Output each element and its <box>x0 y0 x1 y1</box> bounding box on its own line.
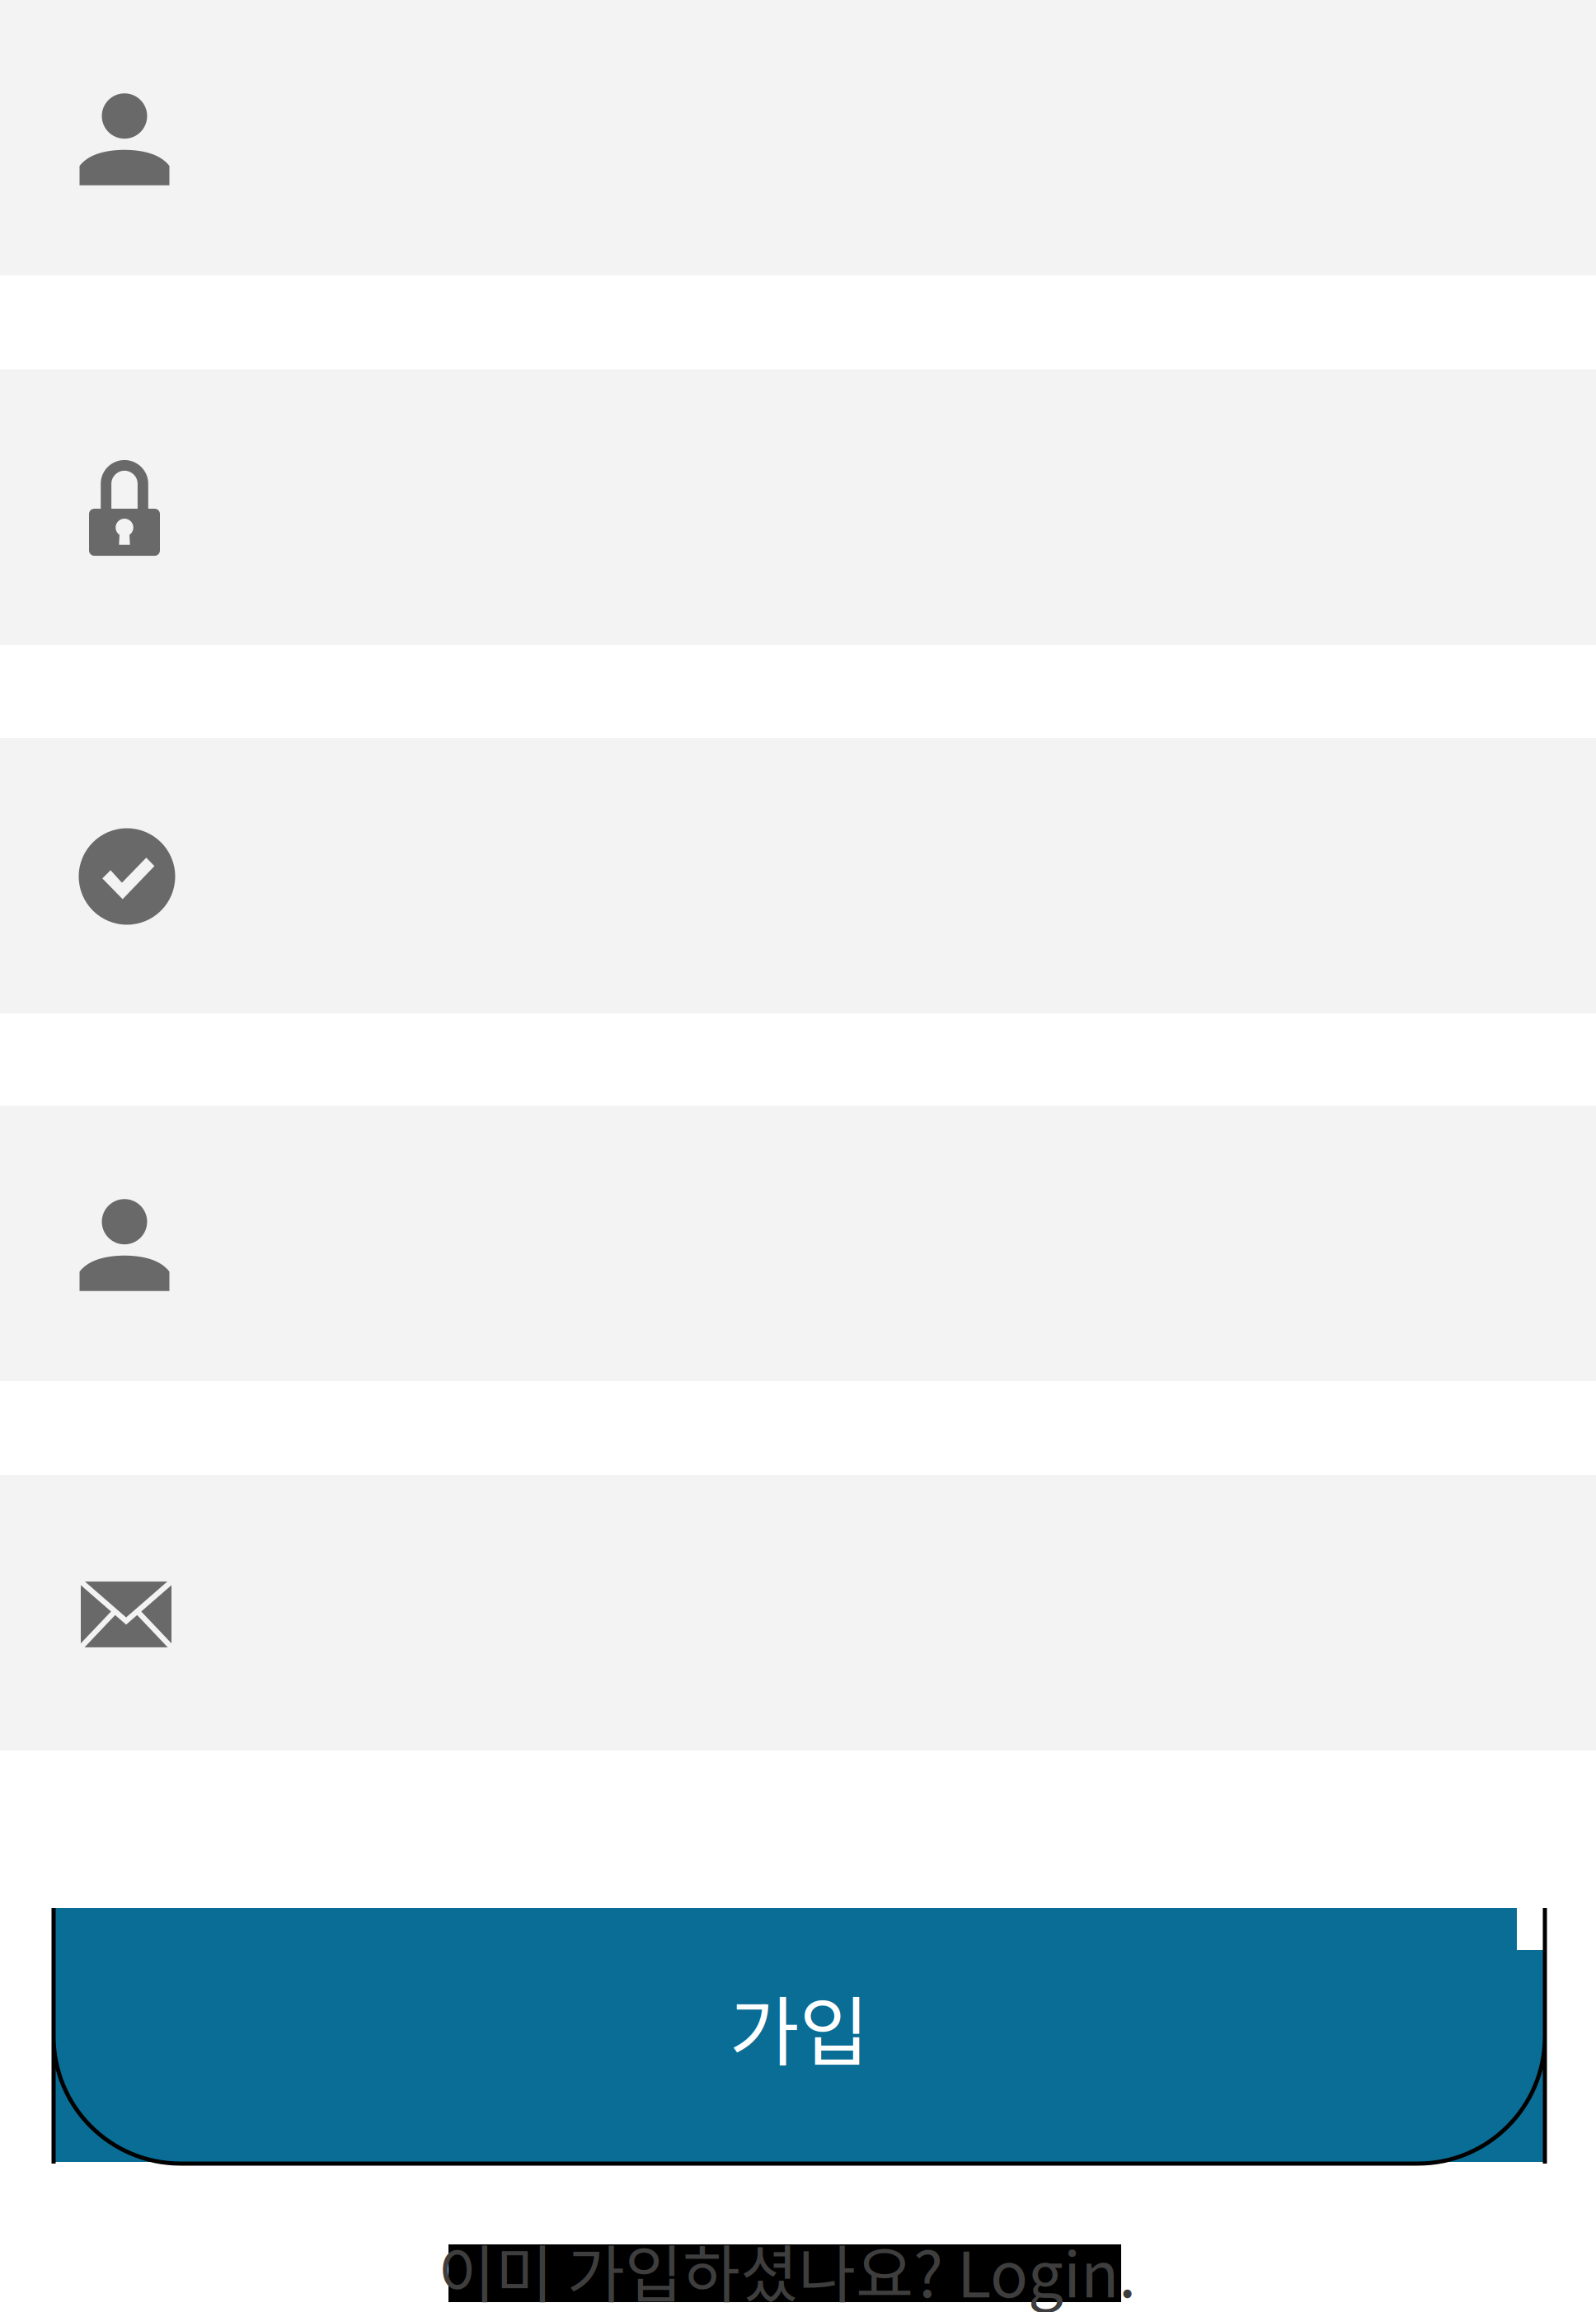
staticText: 이미 가입하셨나요? Login. <box>438 2225 1136 2312</box>
button[interactable]: 가입 <box>52 1908 1547 2165</box>
button[interactable]: Nickname <box>0 1106 1596 1381</box>
button[interactable]: Name <box>0 0 1596 275</box>
button[interactable]: Password confirmation <box>0 738 1596 1013</box>
button[interactable]: Password <box>0 369 1596 645</box>
button[interactable]: Email <box>0 1475 1596 1750</box>
button[interactable]: 이미 가입하셨나요? Login. <box>438 2244 1138 2302</box>
staticText: 가입 <box>729 1972 869 2082</box>
